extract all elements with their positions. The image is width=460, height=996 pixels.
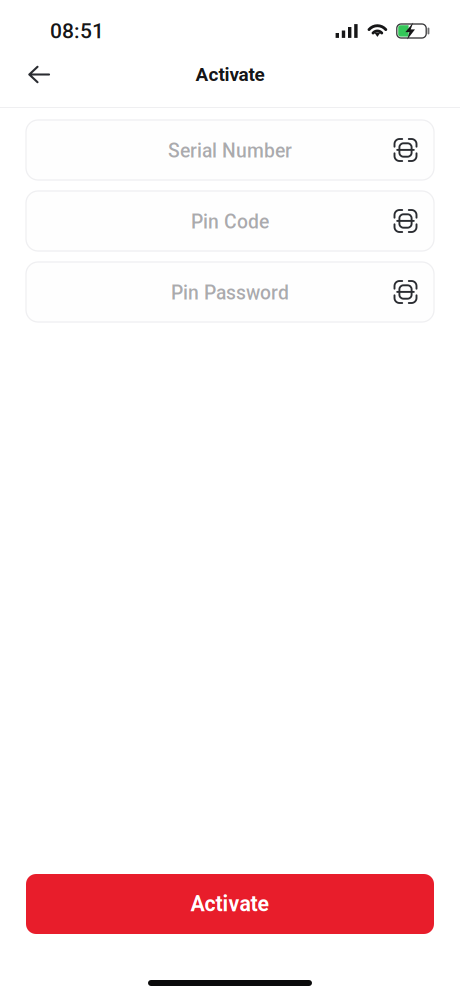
button[interactable]: Activate: [26, 874, 434, 934]
staticText: Pin Code: [191, 211, 269, 233]
button[interactable]: Scan Pin Code: [383, 199, 427, 243]
staticText: 08:51: [50, 19, 104, 43]
staticText: Activate: [190, 891, 269, 916]
button[interactable]: Scan Pin Password: [383, 270, 427, 314]
button[interactable]: Back: [17, 52, 61, 96]
button[interactable]: Scan Serial Number: [383, 128, 427, 172]
staticText: Pin Password: [171, 282, 289, 304]
staticText: Serial Number: [168, 140, 292, 162]
staticText: Activate: [195, 63, 264, 86]
